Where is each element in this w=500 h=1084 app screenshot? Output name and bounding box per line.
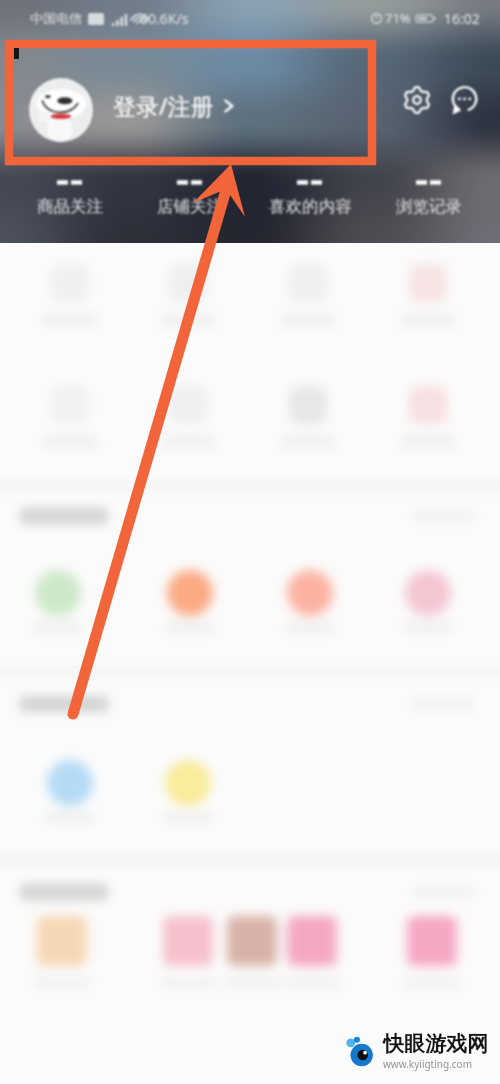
button[interactable] bbox=[405, 570, 451, 616]
button[interactable] bbox=[409, 264, 447, 302]
staticText: 快眼游戏网 bbox=[383, 1031, 488, 1057]
button[interactable] bbox=[287, 570, 333, 616]
button[interactable] bbox=[287, 916, 337, 966]
button[interactable]: 商品关注 bbox=[24, 175, 116, 217]
staticText: 店铺关注 bbox=[157, 196, 223, 217]
staticText: 16:02 bbox=[444, 9, 480, 28]
staticText: 商品关注 bbox=[37, 196, 103, 217]
button[interactable] bbox=[35, 570, 81, 616]
button[interactable] bbox=[37, 916, 87, 966]
button[interactable] bbox=[289, 386, 327, 424]
staticText: 71% bbox=[385, 9, 411, 27]
staticText: 喜欢的内容 bbox=[269, 196, 352, 217]
button[interactable] bbox=[227, 916, 277, 966]
button[interactable]: Messages bbox=[442, 78, 486, 122]
button[interactable] bbox=[47, 760, 93, 806]
staticText: 60.6K/s bbox=[140, 9, 189, 28]
button[interactable]: 登录/注册 bbox=[113, 90, 238, 121]
button[interactable] bbox=[165, 760, 211, 806]
button[interactable] bbox=[409, 386, 447, 424]
button[interactable] bbox=[169, 386, 207, 424]
button[interactable]: 浏览记录 bbox=[383, 175, 475, 217]
button[interactable]: 喜欢的内容 bbox=[264, 175, 356, 217]
button[interactable]: 店铺关注 bbox=[144, 175, 236, 217]
button[interactable]: Settings bbox=[395, 78, 439, 122]
button[interactable] bbox=[407, 916, 457, 966]
staticText: 浏览记录 bbox=[396, 196, 462, 217]
button[interactable] bbox=[167, 570, 213, 616]
staticText: 中国电信 bbox=[30, 10, 82, 26]
button[interactable] bbox=[163, 916, 213, 966]
button[interactable] bbox=[169, 264, 207, 302]
button[interactable]: Avatar bbox=[29, 78, 93, 142]
staticText: www.kyiigting.com bbox=[383, 1057, 473, 1071]
staticText: 登录/注册 bbox=[113, 90, 214, 121]
